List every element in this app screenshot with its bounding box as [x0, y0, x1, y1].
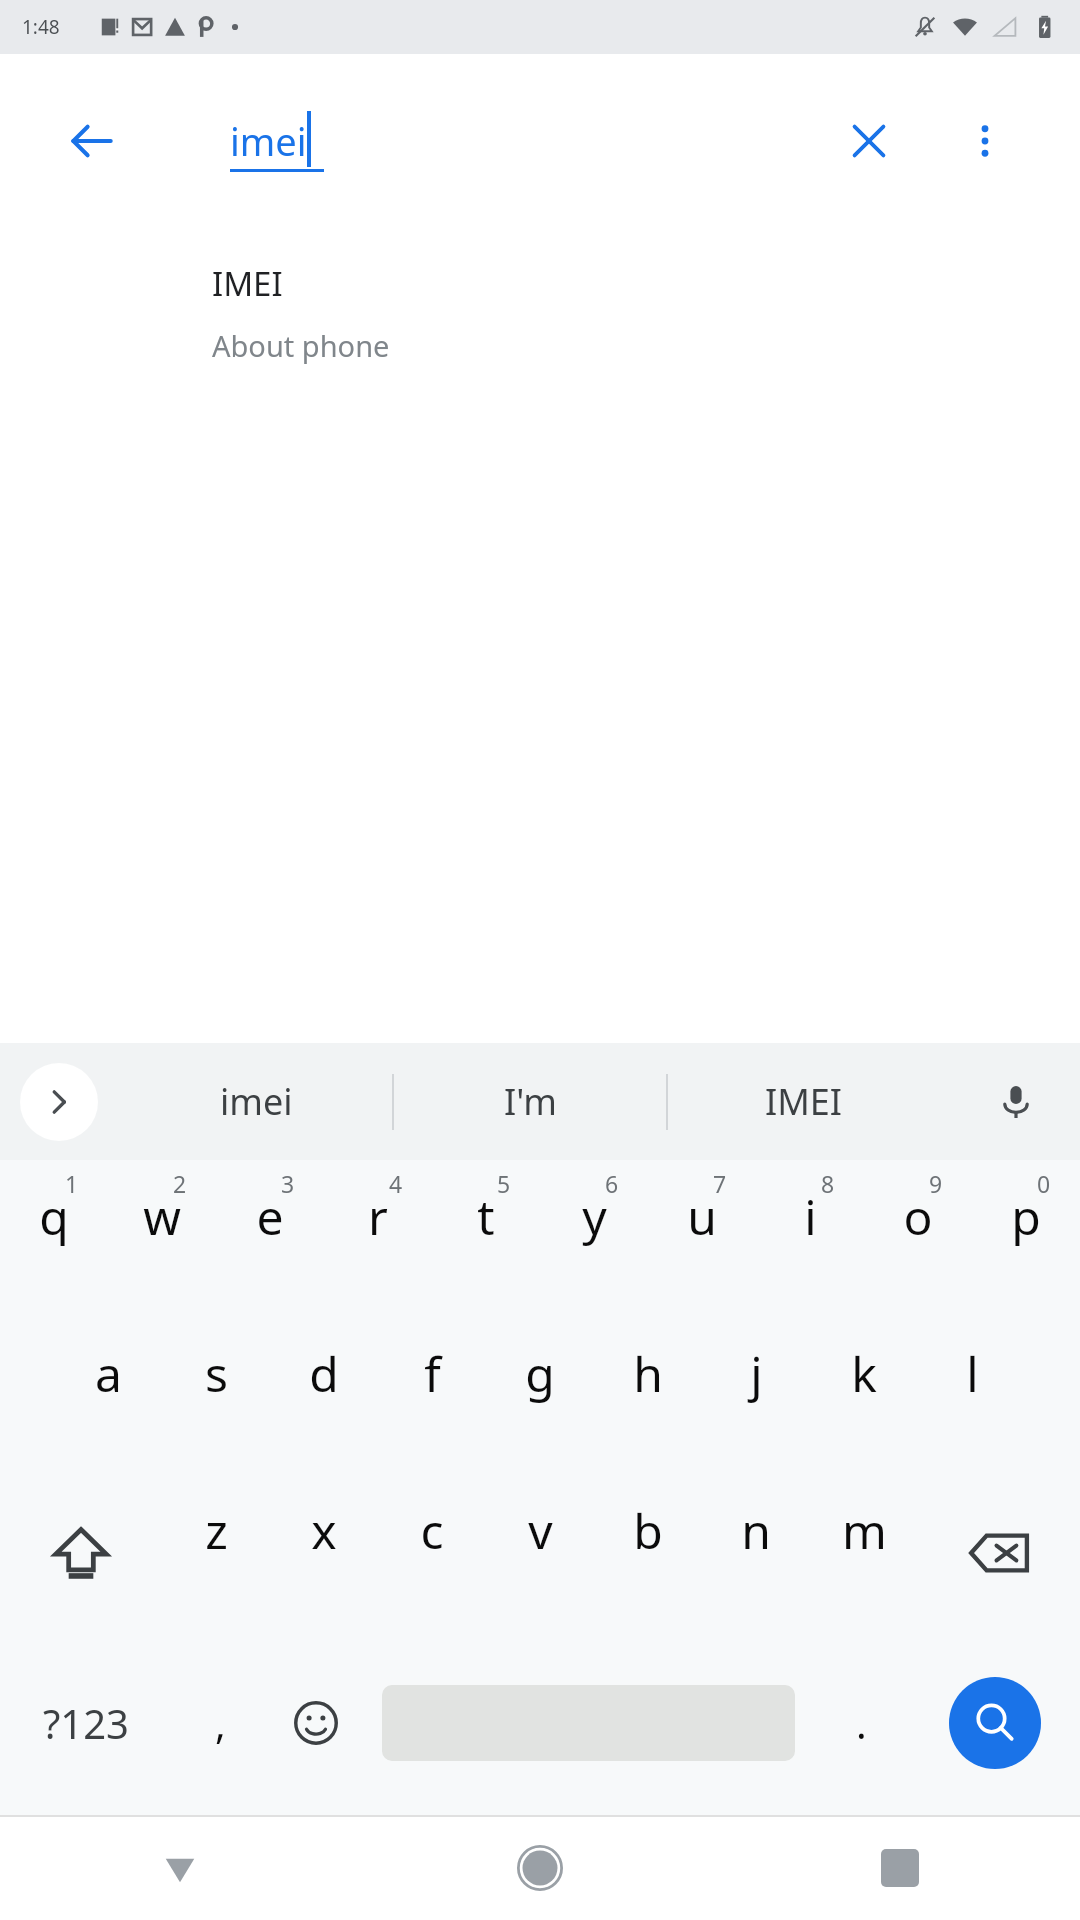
staticText: 1: [65, 1168, 79, 1199]
button[interactable]: z: [162, 1474, 270, 1631]
button[interactable]: s: [162, 1317, 270, 1474]
staticText: IMEI: [212, 261, 283, 306]
staticText: 5: [497, 1168, 511, 1199]
staticText: w: [143, 1184, 181, 1249]
staticText: i: [804, 1184, 817, 1249]
staticText: b: [633, 1498, 663, 1563]
button[interactable]: Voice input: [976, 1062, 1056, 1142]
staticText: 0: [1037, 1168, 1051, 1199]
button[interactable]: f: [378, 1317, 486, 1474]
button[interactable]: Recent apps: [720, 1815, 1080, 1920]
button[interactable]: 9: [864, 1160, 972, 1317]
button[interactable]: h: [594, 1317, 702, 1474]
staticText: imei: [230, 115, 307, 167]
button[interactable]: j: [702, 1317, 810, 1474]
staticText: v: [528, 1498, 553, 1563]
staticText: ?123: [43, 1696, 129, 1750]
button[interactable]: Search: [949, 1677, 1041, 1769]
button[interactable]: k: [810, 1317, 918, 1474]
button[interactable]: 0: [972, 1160, 1080, 1317]
button[interactable]: Back: [54, 104, 128, 178]
button[interactable]: Backspace: [918, 1474, 1080, 1631]
button[interactable]: 5: [432, 1160, 540, 1317]
button[interactable]: 8: [756, 1160, 864, 1317]
staticText: ,: [215, 1696, 226, 1750]
button[interactable]: imei: [120, 1043, 392, 1160]
staticText: z: [205, 1498, 228, 1563]
button[interactable]: IMEI: [668, 1043, 940, 1160]
staticText: a: [95, 1341, 122, 1406]
staticText: 1:48: [22, 14, 60, 40]
staticText: 9: [929, 1168, 943, 1199]
staticText: x: [311, 1498, 337, 1563]
staticText: q: [39, 1184, 69, 1249]
button[interactable]: Expand suggestions: [20, 1063, 98, 1141]
button[interactable]: Home: [360, 1815, 720, 1920]
staticText: l: [966, 1341, 979, 1406]
staticText: p: [1011, 1184, 1041, 1249]
staticText: I'm: [504, 1077, 557, 1126]
staticText: d: [309, 1341, 339, 1406]
staticText: o: [903, 1184, 933, 1249]
button[interactable]: IMEI: [0, 203, 1080, 385]
staticText: y: [582, 1184, 607, 1249]
button[interactable]: 4: [324, 1160, 432, 1317]
button[interactable]: .: [813, 1631, 909, 1815]
button[interactable]: m: [810, 1474, 918, 1631]
button[interactable]: v: [486, 1474, 594, 1631]
staticText: c: [420, 1498, 444, 1563]
button[interactable]: More options: [948, 104, 1022, 178]
staticText: s: [205, 1341, 228, 1406]
staticText: 4: [389, 1168, 403, 1199]
button[interactable]: x: [270, 1474, 378, 1631]
staticText: 6: [605, 1168, 619, 1199]
button[interactable]: ,: [172, 1631, 268, 1815]
staticText: IMEI: [765, 1077, 843, 1126]
button[interactable]: d: [270, 1317, 378, 1474]
button[interactable]: ?123: [0, 1631, 172, 1815]
staticText: t: [477, 1184, 495, 1249]
staticText: 2: [173, 1168, 187, 1199]
button[interactable]: Emoji: [268, 1631, 364, 1815]
button[interactable]: Hide keyboard: [0, 1815, 360, 1920]
staticText: 7: [713, 1168, 727, 1199]
button[interactable]: 6: [540, 1160, 648, 1317]
button[interactable]: 1: [0, 1160, 108, 1317]
staticText: j: [750, 1341, 763, 1406]
button[interactable]: l: [918, 1317, 1026, 1474]
staticText: About phone: [212, 326, 390, 365]
button[interactable]: Shift: [0, 1474, 162, 1631]
staticText: 8: [821, 1168, 835, 1199]
staticText: r: [368, 1184, 388, 1249]
button[interactable]: c: [378, 1474, 486, 1631]
staticText: k: [851, 1341, 877, 1406]
button[interactable]: b: [594, 1474, 702, 1631]
button[interactable]: I'm: [394, 1043, 666, 1160]
staticText: imei: [220, 1077, 293, 1126]
staticText: f: [424, 1341, 441, 1406]
staticText: 3: [281, 1168, 295, 1199]
button[interactable]: a: [54, 1317, 162, 1474]
staticText: .: [856, 1696, 867, 1750]
button[interactable]: n: [702, 1474, 810, 1631]
button[interactable]: 2: [108, 1160, 216, 1317]
button[interactable]: Clear search: [832, 104, 906, 178]
staticText: n: [741, 1498, 771, 1563]
staticText: m: [842, 1498, 887, 1563]
button[interactable]: 7: [648, 1160, 756, 1317]
button[interactable]: Back: [22, 79, 1058, 203]
staticText: g: [525, 1341, 555, 1406]
staticText: h: [633, 1341, 663, 1406]
staticText: e: [256, 1184, 284, 1249]
button[interactable]: 3: [216, 1160, 324, 1317]
button[interactable]: g: [486, 1317, 594, 1474]
staticText: u: [687, 1184, 717, 1249]
